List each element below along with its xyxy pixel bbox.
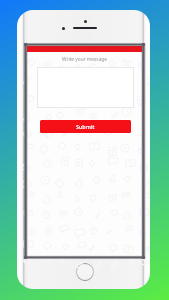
- staticText: Write your message: [27, 56, 142, 63]
- button[interactable]: Submit: [40, 120, 131, 133]
- button[interactable]: [37, 67, 134, 108]
- staticText: Submit: [76, 123, 95, 130]
- button[interactable]: Home: [77, 264, 93, 280]
